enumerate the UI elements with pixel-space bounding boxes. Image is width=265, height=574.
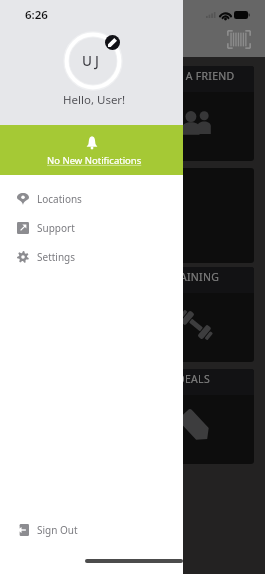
- button[interactable]: TRAINING: [132, 267, 254, 362]
- staticText: DEALS: [177, 372, 210, 386]
- staticText: Locations: [37, 192, 82, 206]
- staticText: 6:26: [25, 7, 48, 23]
- button[interactable]: Sign Out: [0, 515, 183, 544]
- staticText: Hello, User!: [63, 92, 126, 108]
- staticText: No New Notifications: [47, 154, 142, 167]
- button[interactable]: U: [64, 31, 124, 91]
- button[interactable]: [6, 168, 128, 263]
- other: Edit profile: [105, 35, 120, 50]
- staticText: Sign Out: [37, 523, 78, 537]
- button[interactable]: DEALS: [132, 369, 254, 464]
- button[interactable]: Support: [0, 213, 183, 242]
- staticText: U: [82, 52, 92, 70]
- button[interactable]: Locations: [0, 184, 183, 213]
- button[interactable]: No New Notifications: [0, 125, 183, 175]
- button[interactable]: Scan card: [227, 30, 251, 49]
- staticText: REFER A FRIEND: [25, 69, 109, 83]
- staticText: REFER A FRIEND: [151, 69, 235, 83]
- button[interactable]: Settings: [0, 242, 183, 271]
- staticText: J: [95, 52, 99, 70]
- staticText: TRAINING: [167, 270, 220, 284]
- staticText: Settings: [37, 250, 76, 264]
- button[interactable]: [132, 168, 254, 263]
- staticText: Support: [37, 221, 75, 235]
- button[interactable]: REFER A FRIEND: [132, 66, 254, 161]
- button[interactable]: REFER A FRIEND: [6, 66, 128, 161]
